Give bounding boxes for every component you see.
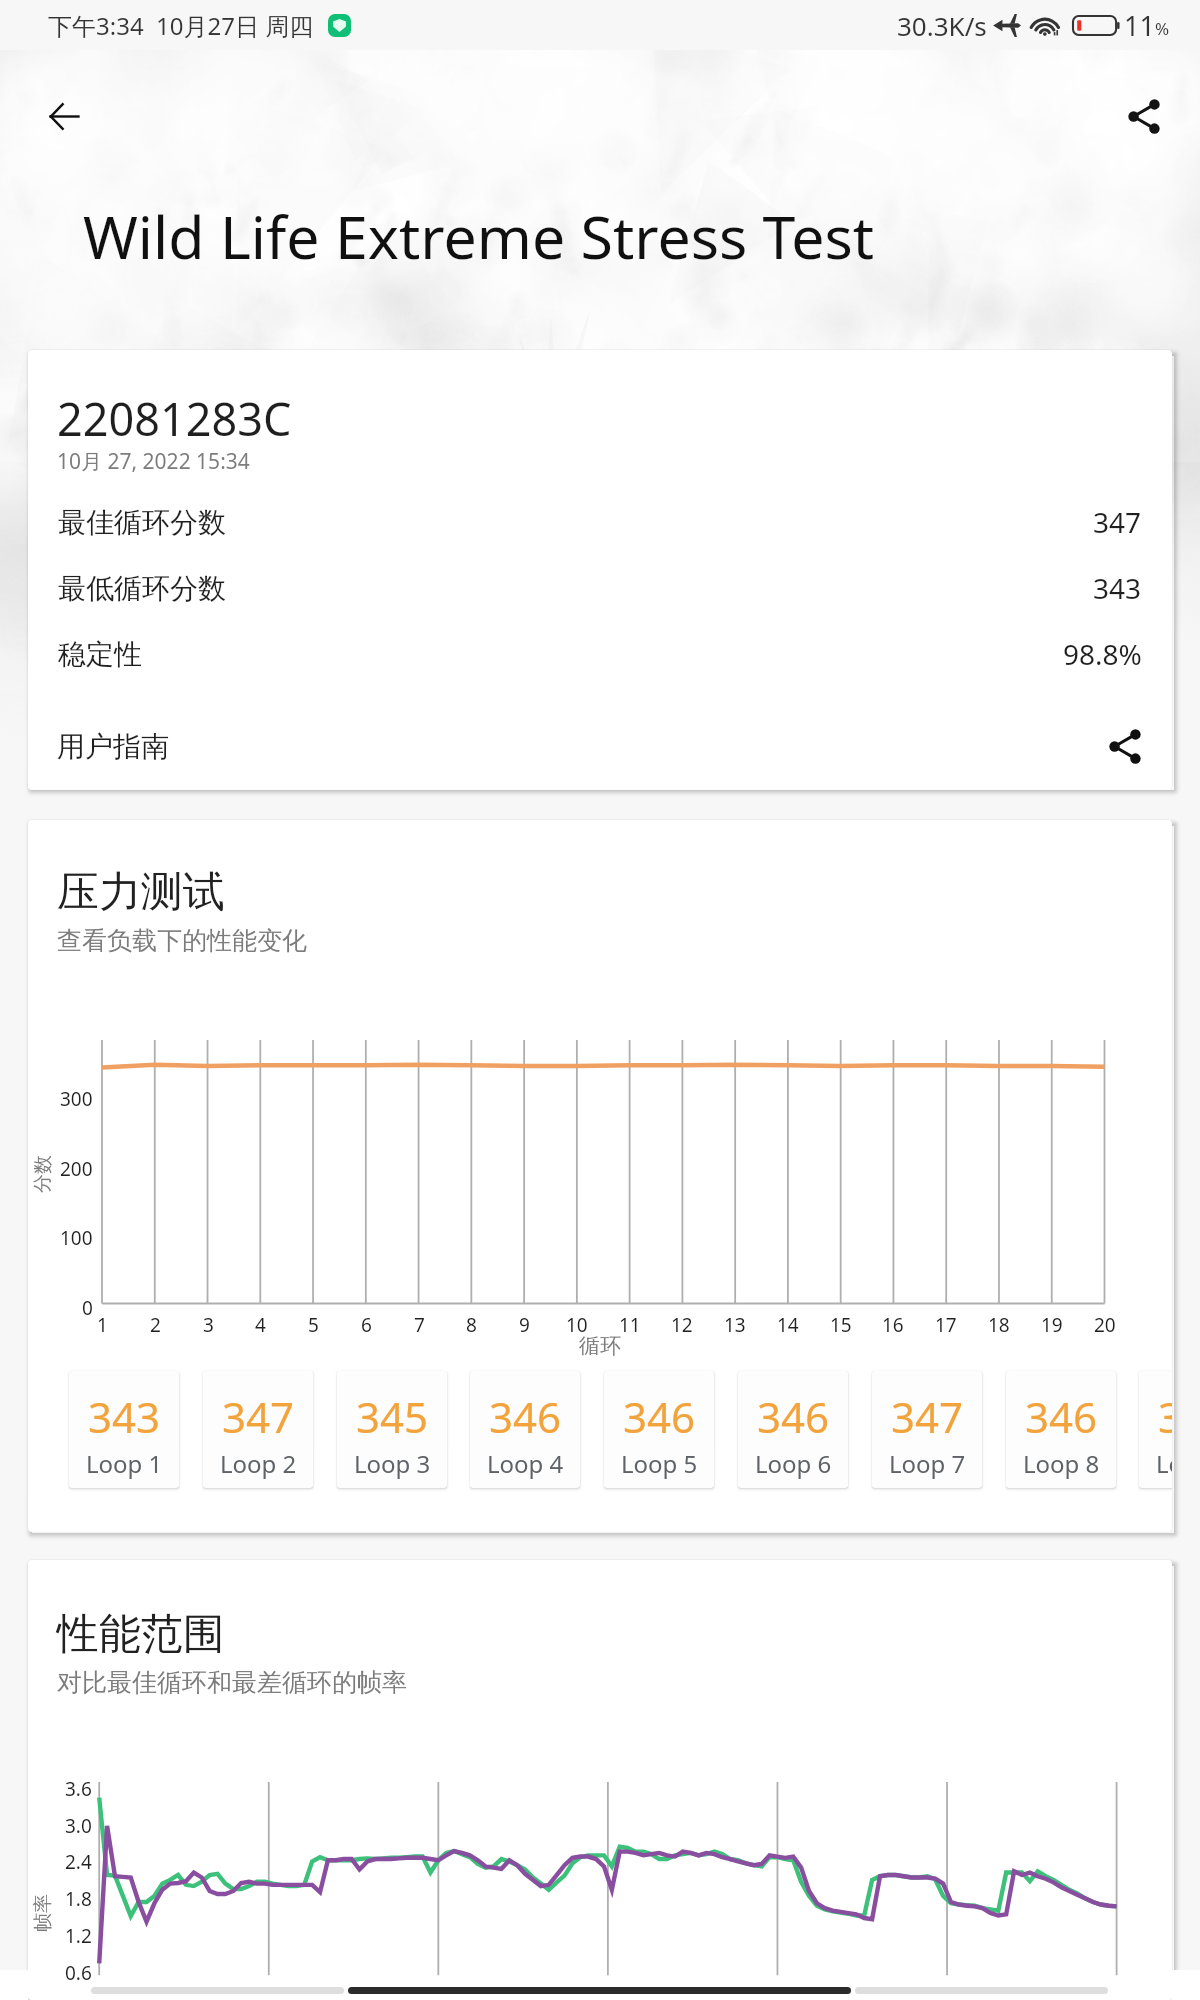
staticText: 2.4 [65, 1849, 92, 1875]
staticText: 用户指南 [57, 729, 169, 764]
staticText: Loop 9 [1156, 1447, 1172, 1480]
staticText: 8 [466, 1312, 477, 1338]
button[interactable]: Share [1108, 80, 1180, 152]
staticText: 347 [222, 1388, 295, 1445]
staticText: Loop 8 [1023, 1447, 1100, 1480]
staticText: Wild Life Extreme Stress Test [83, 196, 875, 276]
staticText: 346 [1025, 1388, 1098, 1445]
staticText: 11 [1124, 7, 1155, 44]
staticText: 分数 [31, 1155, 55, 1193]
staticText: 6 [361, 1312, 372, 1338]
staticText: Loop 7 [889, 1447, 966, 1480]
button[interactable]: 343 [69, 1371, 179, 1488]
staticText: 压力测试 [57, 866, 225, 919]
staticText: Loop 3 [354, 1447, 431, 1480]
staticText: 0 [82, 1295, 93, 1321]
staticText: 347 [1093, 503, 1142, 541]
staticText: 98.8% [1063, 635, 1142, 673]
button[interactable]: Back [28, 80, 100, 152]
staticText: 15 [830, 1312, 852, 1338]
staticText: Loop 5 [621, 1447, 698, 1480]
staticText: 12 [671, 1312, 693, 1338]
staticText: 18 [988, 1312, 1010, 1338]
staticText: 345 [356, 1388, 429, 1445]
staticText: 19 [1041, 1312, 1063, 1338]
staticText: 30.3K/s [897, 8, 987, 43]
button[interactable]: Share result [1098, 719, 1152, 773]
staticText: 343 [88, 1388, 161, 1445]
staticText: 性能范围 [57, 1608, 225, 1661]
staticText: 22081283C [57, 388, 292, 449]
staticText: 对比最佳循环和最差循环的帧率 [57, 1667, 407, 1698]
staticText: 查看负载下的性能变化 [57, 925, 307, 956]
staticText: 循环 [579, 1333, 621, 1359]
staticText: 1.2 [65, 1923, 92, 1949]
staticText: 100 [60, 1225, 93, 1251]
button[interactable]: 346 [604, 1371, 714, 1488]
staticText: 14 [777, 1312, 799, 1338]
staticText: 帧率 [31, 1894, 55, 1932]
staticText: Loop 4 [487, 1447, 564, 1480]
button[interactable]: 用户指南 [28, 711, 1172, 781]
staticText: 3.6 [65, 1776, 92, 1802]
button[interactable]: 346 [1006, 1371, 1116, 1488]
staticText: 16 [882, 1312, 904, 1338]
staticText: 345 [1158, 1388, 1172, 1445]
staticText: 200 [60, 1156, 93, 1182]
staticText: 最低循环分数 [58, 571, 226, 606]
staticText: 4 [255, 1312, 266, 1338]
staticText: 2 [150, 1312, 161, 1338]
staticText: 0.6 [65, 1960, 92, 1986]
staticText: 3.0 [65, 1813, 92, 1839]
staticText: 稳定性 [58, 637, 142, 672]
staticText: Loop 2 [220, 1447, 297, 1480]
staticText: 9 [519, 1312, 530, 1338]
staticText: 下午3:34 10月27日 周四 [48, 9, 314, 42]
staticText: 17 [935, 1312, 957, 1338]
staticText: 347 [891, 1388, 964, 1445]
staticText: 10月 27, 2022 15:34 [57, 447, 250, 476]
staticText: 346 [623, 1388, 696, 1445]
staticText: 346 [757, 1388, 830, 1445]
staticText: 346 [489, 1388, 562, 1445]
button[interactable]: 347 [203, 1371, 313, 1488]
staticText: 11 [619, 1312, 641, 1338]
staticText: 7 [414, 1312, 425, 1338]
staticText: 最佳循环分数 [58, 505, 226, 540]
staticText: 300 [60, 1086, 93, 1112]
button[interactable]: 345 [337, 1371, 447, 1488]
button[interactable]: 346 [738, 1371, 848, 1488]
button[interactable]: 345 [1139, 1371, 1172, 1488]
staticText: 10 [566, 1312, 588, 1338]
staticText: 13 [724, 1312, 746, 1338]
staticText: 1 [97, 1312, 108, 1338]
button[interactable]: 347 [872, 1371, 982, 1488]
staticText: Loop 1 [86, 1447, 163, 1480]
staticText: 343 [1093, 569, 1142, 607]
staticText: Loop 6 [755, 1447, 832, 1480]
staticText: 1.8 [65, 1886, 92, 1912]
staticText: 5 [308, 1312, 319, 1338]
button[interactable]: 346 [470, 1371, 580, 1488]
staticText: % [1155, 17, 1170, 40]
staticText: 20 [1094, 1312, 1116, 1338]
staticText: 3 [203, 1312, 214, 1338]
